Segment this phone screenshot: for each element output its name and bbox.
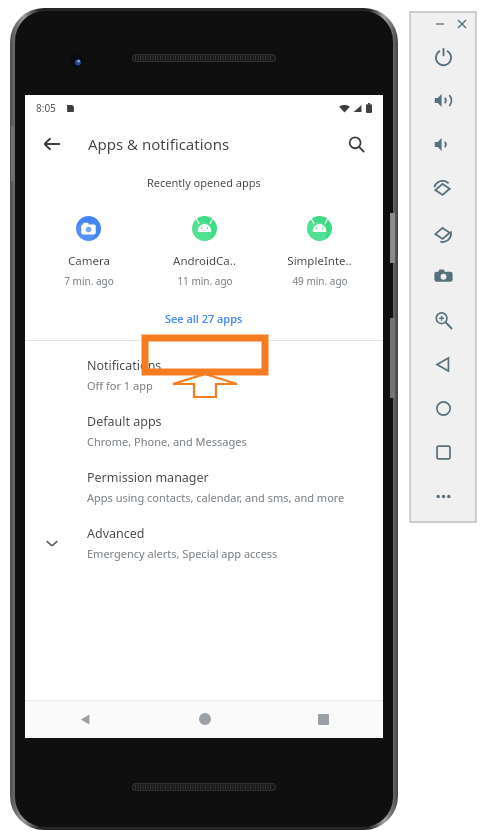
staticText: See all 27 apps — [165, 311, 243, 326]
staticText: Permission manager — [87, 469, 209, 486]
button[interactable]: Home — [410, 386, 476, 430]
button[interactable]: Zoom — [410, 298, 476, 342]
staticText: 8:05 — [36, 101, 56, 115]
staticText: Default apps — [87, 413, 162, 430]
button[interactable]: Minimize — [430, 14, 449, 33]
staticText: Chrome, Phone, and Messages — [87, 434, 247, 449]
button[interactable]: Permission manager — [25, 459, 383, 515]
button[interactable]: See all 27 apps — [151, 306, 257, 331]
button[interactable]: Close — [452, 14, 471, 33]
button[interactable]: Back — [25, 700, 145, 738]
button[interactable]: Camera — [36, 214, 141, 290]
staticText: Recently opened apps — [147, 175, 261, 190]
staticText: Apps using contacts, calendar, and sms, … — [87, 490, 345, 505]
button[interactable]: Volume up — [410, 78, 476, 122]
button[interactable]: Notifications — [25, 347, 383, 403]
staticText: 49 min. ago — [292, 274, 348, 288]
button[interactable]: Rotate left — [410, 166, 476, 210]
staticText: Emergency alerts, Special app access — [87, 546, 278, 561]
button[interactable]: Overview — [264, 700, 383, 738]
button[interactable]: Advanced — [25, 515, 383, 571]
button[interactable]: SimpleInte.. — [267, 214, 372, 290]
button[interactable]: Power — [410, 34, 476, 78]
button[interactable]: Home — [145, 700, 264, 738]
staticText: Apps & notifications — [88, 134, 230, 154]
staticText: AndroidCa.. — [173, 253, 236, 269]
button[interactable]: More — [410, 474, 476, 518]
button[interactable]: Volume down — [410, 122, 476, 166]
staticText: Notifications — [87, 357, 162, 374]
button[interactable]: Default apps — [25, 403, 383, 459]
button[interactable]: Overview — [410, 430, 476, 474]
staticText: Off for 1 app — [87, 378, 153, 393]
button[interactable]: Back — [410, 342, 476, 386]
staticText: 11 min. ago — [177, 274, 233, 288]
staticText: 7 min. ago — [64, 274, 114, 288]
staticText: Camera — [68, 253, 110, 269]
button[interactable]: Rotate right — [410, 210, 476, 254]
button[interactable]: Take screenshot — [410, 254, 476, 298]
button[interactable]: Back — [32, 124, 72, 164]
button[interactable]: Search — [336, 124, 376, 164]
staticText: SimpleInte.. — [287, 253, 352, 269]
staticText: Advanced — [87, 525, 145, 542]
button[interactable]: AndroidCa.. — [152, 214, 257, 290]
